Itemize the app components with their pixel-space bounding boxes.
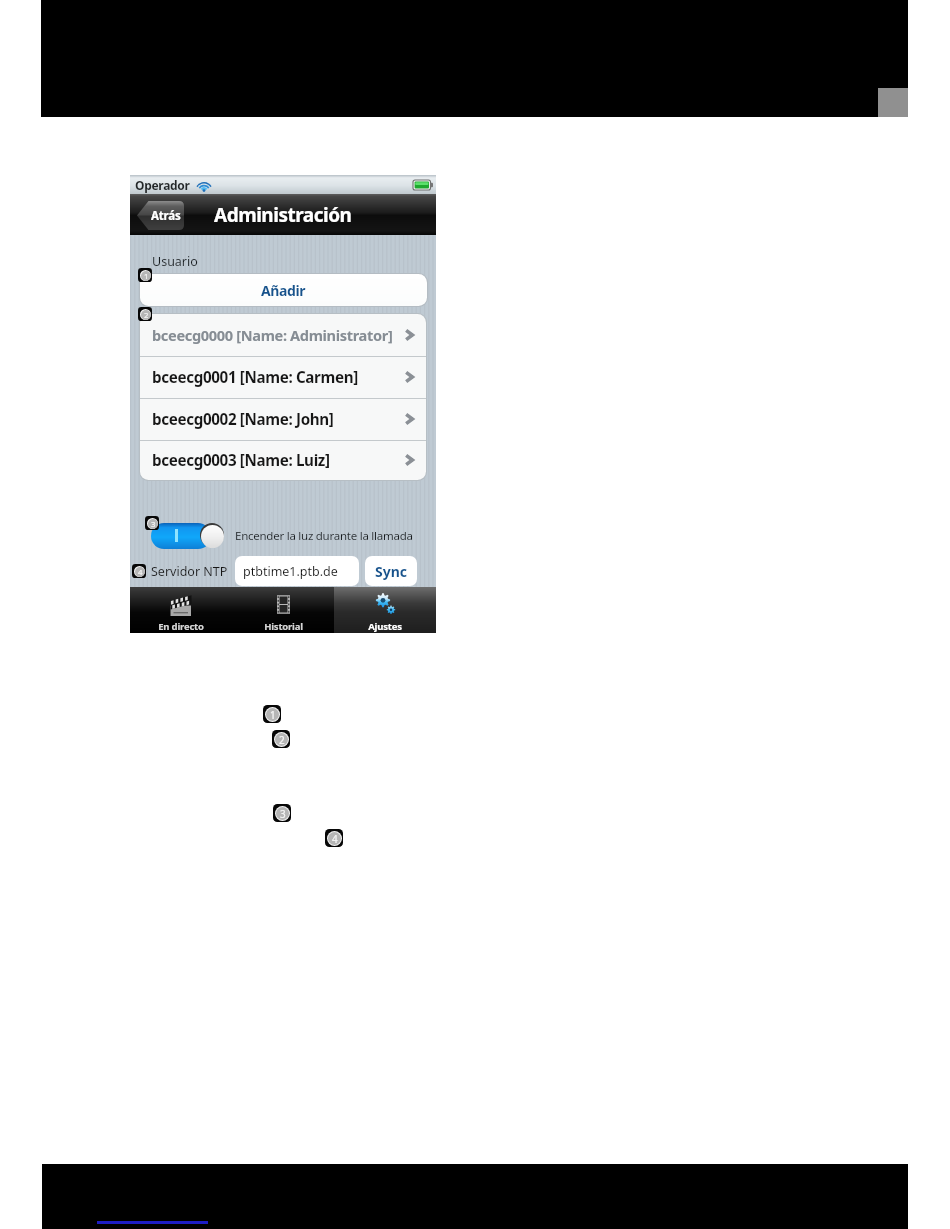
staticText: 2 — [279, 733, 285, 746]
button[interactable]: Añadir — [140, 274, 427, 306]
staticText: bceecg0003 [Name: Luiz] — [152, 450, 330, 471]
button[interactable]: En directo — [130, 587, 232, 633]
button[interactable]: Ajustes — [334, 587, 436, 633]
button[interactable]: bceecg0002 [Name: John] — [140, 398, 426, 440]
staticText: ptbtime1.ptb.de — [243, 563, 338, 580]
staticText: En directo — [158, 620, 204, 633]
staticText: 4 — [332, 832, 338, 845]
staticText: Administración — [214, 202, 352, 228]
staticText: Ajustes — [368, 620, 402, 633]
button[interactable]: Sync — [365, 556, 417, 586]
staticText: 1 — [144, 271, 149, 281]
staticText: Sync — [375, 562, 408, 581]
staticText: bceecg0001 [Name: Carmen] — [152, 367, 358, 388]
staticText: Historial — [264, 620, 303, 633]
staticText: Encender la luz durante la llamada — [235, 528, 413, 544]
button[interactable]: bceecg0000 [Name: Administrator] — [140, 314, 426, 356]
staticText: Usuario — [152, 253, 198, 270]
staticText: Atrás — [151, 208, 181, 224]
staticText: Operador — [135, 177, 190, 193]
button[interactable]: bceecg0001 [Name: Carmen] — [140, 356, 426, 398]
button[interactable]: bceecg0003 [Name: Luiz] — [140, 440, 426, 480]
staticText: 1 — [270, 708, 276, 721]
button[interactable]: ptbtime1.ptb.de — [235, 556, 359, 586]
button[interactable]: Historial — [232, 587, 334, 633]
staticText: 2 — [144, 310, 149, 320]
button[interactable]: Encender la luz durante la llamada — [151, 521, 224, 549]
button[interactable]: Atrás — [136, 201, 184, 230]
staticText: Añadir — [261, 281, 306, 300]
staticText: 3 — [151, 519, 156, 529]
staticText: 3 — [280, 807, 286, 820]
staticText: 4 — [138, 567, 143, 577]
staticText: bceecg0000 [Name: Administrator] — [152, 325, 393, 345]
staticText: bceecg0002 [Name: John] — [152, 409, 334, 430]
staticText: Servidor NTP — [151, 563, 228, 580]
